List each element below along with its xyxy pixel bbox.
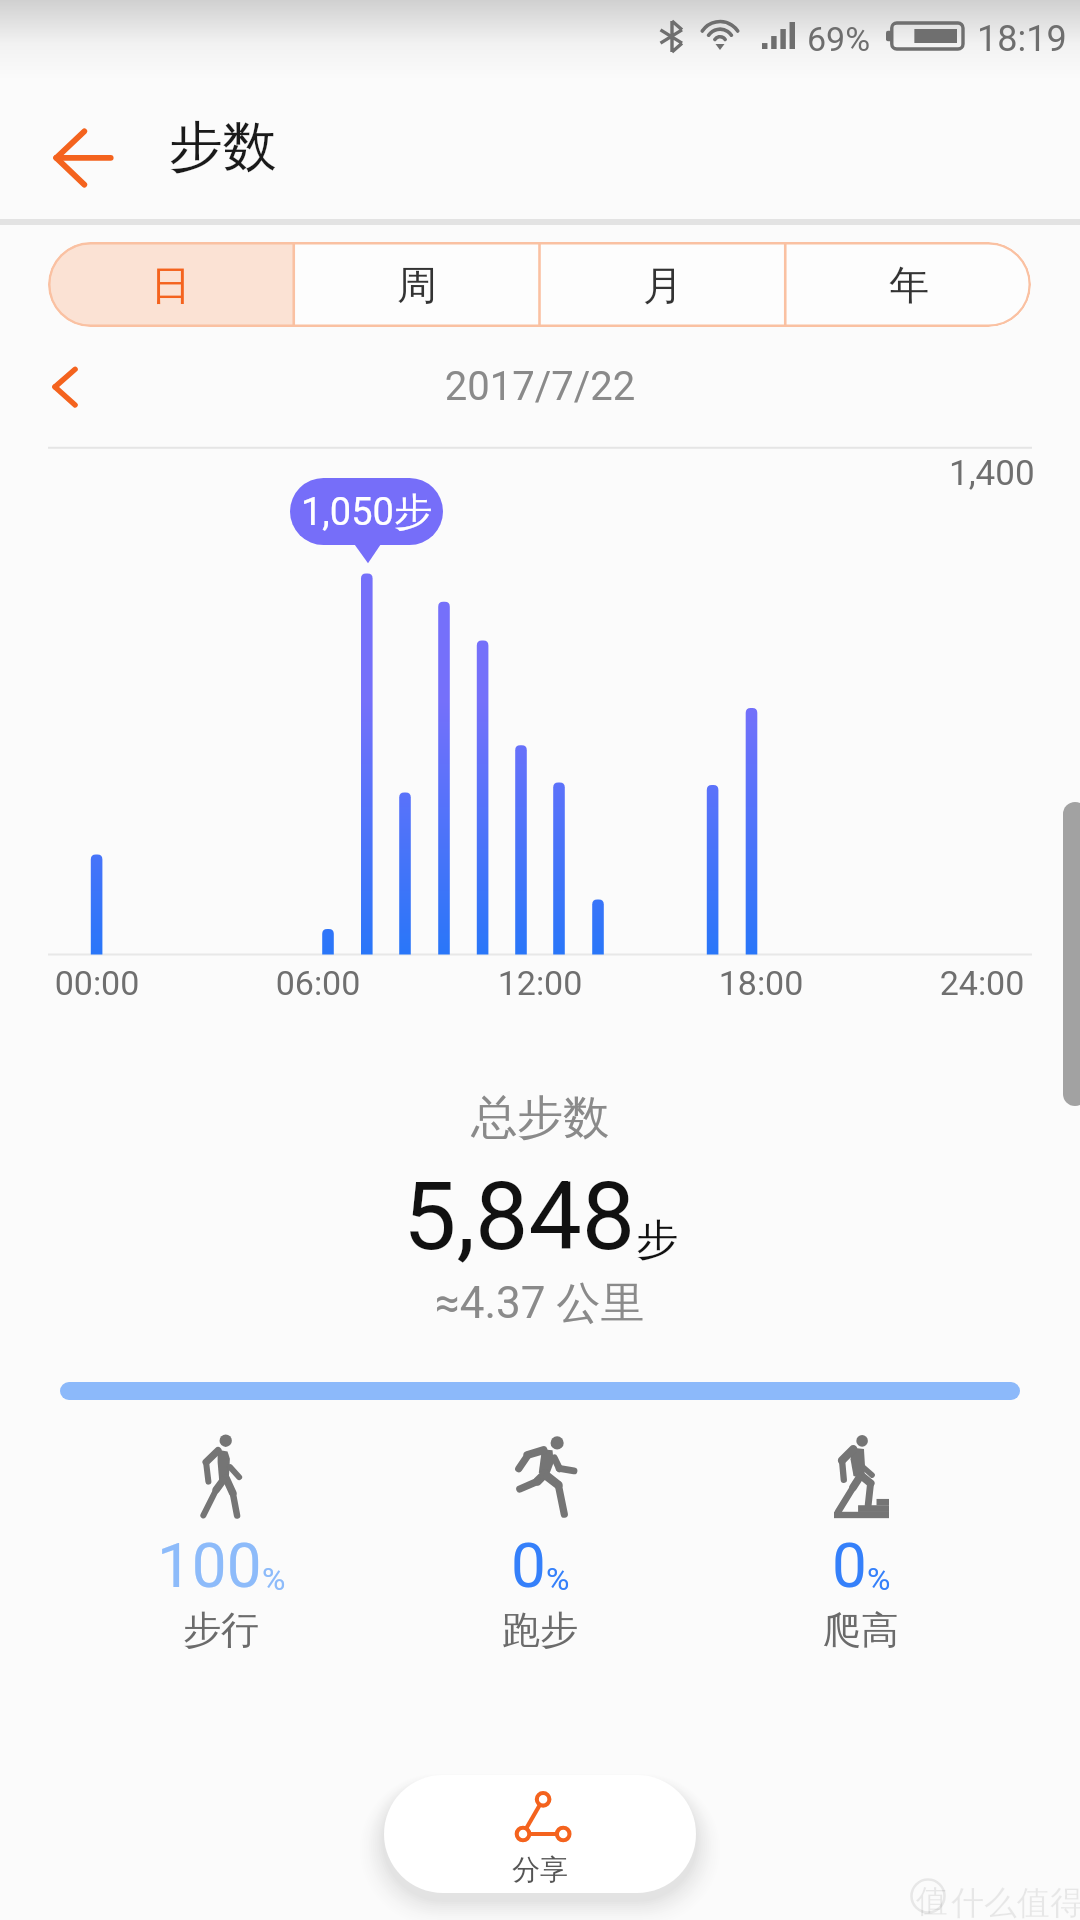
- staticText: 跑步: [502, 1606, 578, 1654]
- button[interactable]: 年: [786, 242, 1031, 327]
- button[interactable]: Previous day: [24, 351, 110, 433]
- staticText: %: [262, 1560, 286, 1598]
- button[interactable]: 0: [410, 1433, 670, 1654]
- staticText: 18:00: [701, 963, 821, 1003]
- staticText: 步: [636, 1214, 678, 1267]
- staticText: 爬高: [823, 1606, 899, 1654]
- staticText: 1,400: [949, 453, 1035, 494]
- button[interactable]: 分享: [384, 1775, 696, 1893]
- staticText: 100: [157, 1529, 262, 1602]
- staticText: 总步数: [471, 1089, 609, 1147]
- button[interactable]: 日: [48, 242, 294, 327]
- staticText: 00:00: [37, 963, 157, 1003]
- staticText: 2017/7/22: [0, 363, 1080, 410]
- button[interactable]: 月: [540, 242, 786, 327]
- staticText: 步数: [169, 113, 277, 181]
- staticText: ≈4.37 公里: [435, 1276, 645, 1331]
- staticText: 步行: [183, 1606, 259, 1654]
- staticText: 日: [151, 260, 191, 310]
- staticText: 69%: [807, 19, 871, 59]
- staticText: %: [546, 1560, 570, 1598]
- staticText: 什么值得买: [951, 1882, 1080, 1920]
- staticText: 5,848: [403, 1161, 636, 1272]
- button[interactable]: Back: [22, 91, 146, 203]
- button[interactable]: 100: [91, 1433, 351, 1654]
- staticText: 0: [511, 1529, 546, 1602]
- staticText: 24:00: [922, 963, 1042, 1003]
- staticText: 年: [889, 260, 929, 310]
- staticText: 周: [397, 260, 437, 310]
- staticText: 1,050步: [301, 488, 432, 536]
- staticText: 06:00: [258, 963, 378, 1003]
- staticText: 值: [916, 1881, 948, 1920]
- staticText: 18:19: [977, 18, 1067, 60]
- staticText: 12:00: [480, 963, 600, 1003]
- staticText: 月: [643, 260, 683, 310]
- staticText: 0: [832, 1529, 867, 1602]
- staticText: 分享: [384, 1852, 696, 1887]
- button[interactable]: 0: [731, 1433, 991, 1654]
- staticText: %: [867, 1560, 891, 1598]
- button[interactable]: 周: [294, 242, 540, 327]
